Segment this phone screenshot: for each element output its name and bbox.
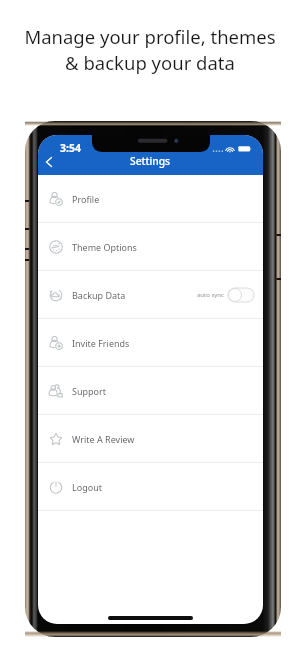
staticText: auto sync <box>197 291 224 299</box>
button[interactable]: Support <box>38 367 263 415</box>
button[interactable]: Logout <box>38 463 263 511</box>
button[interactable]: Backup Data <box>38 271 263 319</box>
staticText: Profile <box>72 193 100 205</box>
button[interactable]: Theme Options <box>38 223 263 271</box>
button[interactable]: Auto sync toggle <box>228 288 254 302</box>
staticText: Invite Friends <box>72 337 130 349</box>
button[interactable]: Back <box>40 153 58 171</box>
staticText: Support <box>72 385 106 397</box>
staticText: Settings <box>130 154 171 168</box>
staticText: Manage your profile, themes & backup you… <box>0 24 300 75</box>
button[interactable]: Invite Friends <box>38 319 263 367</box>
button[interactable]: Profile <box>38 175 263 223</box>
staticText: Backup Data <box>72 289 126 301</box>
button[interactable]: Write A Review <box>38 415 263 463</box>
staticText: Write A Review <box>72 433 135 445</box>
staticText: Logout <box>72 481 102 493</box>
staticText: 3:54 <box>60 141 81 155</box>
staticText: Theme Options <box>72 241 137 253</box>
